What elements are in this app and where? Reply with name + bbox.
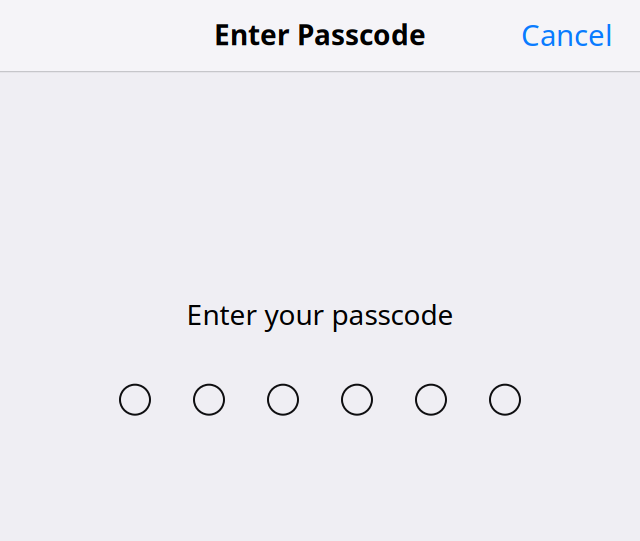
button[interactable]: Cancel — [507, 3, 627, 66]
staticText: Enter your passcode — [186, 295, 453, 333]
staticText: Cancel — [521, 15, 613, 54]
staticText: Enter Passcode — [214, 16, 426, 53]
